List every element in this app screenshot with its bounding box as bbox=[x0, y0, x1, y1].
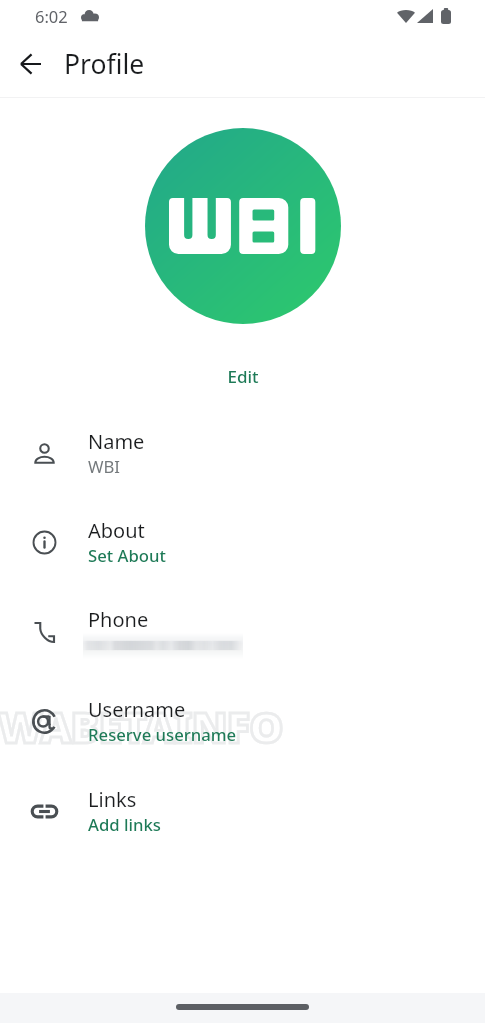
staticText: Links bbox=[88, 786, 137, 813]
button[interactable]: Username bbox=[0, 676, 485, 766]
button[interactable]: Profile photo bbox=[145, 128, 341, 324]
button[interactable]: Links bbox=[0, 766, 485, 856]
staticText: Reserve username bbox=[88, 723, 237, 746]
button[interactable]: Back bbox=[6, 40, 54, 88]
button[interactable]: Edit bbox=[217, 362, 269, 391]
button[interactable]: Phone bbox=[0, 587, 485, 677]
staticText: About bbox=[88, 517, 145, 544]
button[interactable]: Name bbox=[0, 408, 485, 498]
button[interactable]: About bbox=[0, 497, 485, 587]
staticText: Add links bbox=[88, 813, 161, 836]
staticText: WABETAINFO bbox=[0, 697, 283, 756]
staticText: Set About bbox=[88, 544, 166, 567]
staticText: Phone bbox=[88, 606, 149, 633]
staticText: WBI bbox=[88, 455, 121, 478]
staticText: 6:02 bbox=[35, 5, 68, 27]
staticText: Username bbox=[88, 696, 186, 723]
staticText: Edit bbox=[227, 365, 259, 388]
button[interactable]: Home bbox=[176, 1004, 309, 1010]
staticText: Name bbox=[88, 428, 145, 455]
staticText: Profile bbox=[64, 46, 145, 82]
